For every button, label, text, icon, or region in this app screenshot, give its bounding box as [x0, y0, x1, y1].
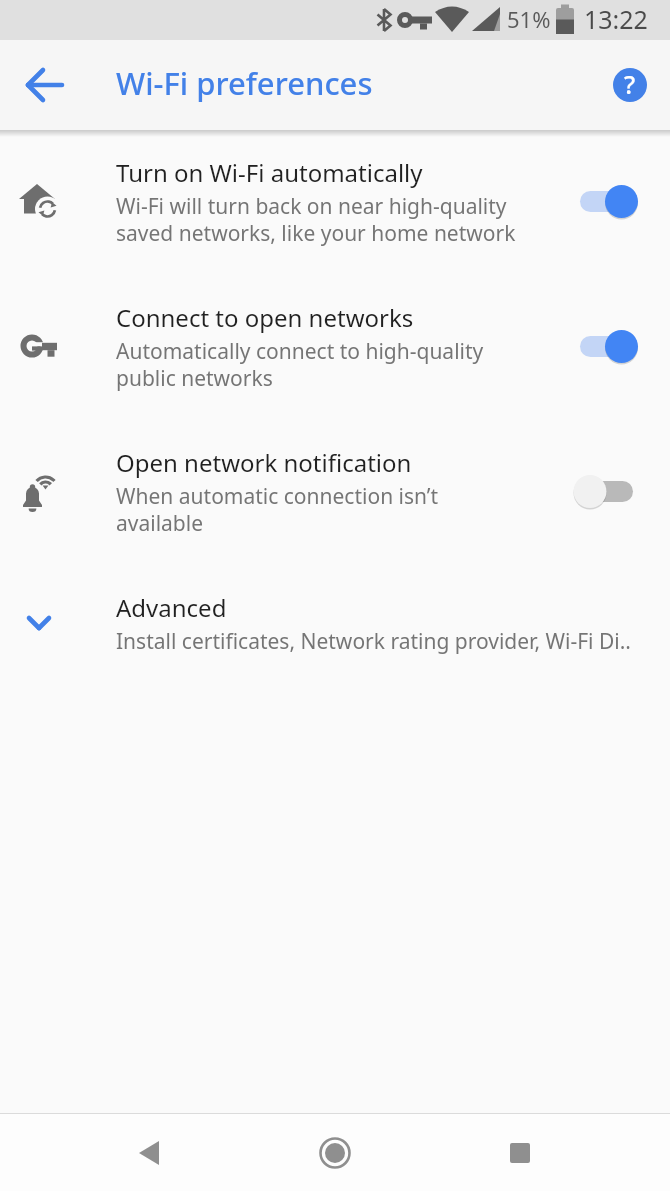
- staticText: Wi-Fi will turn back on near high-qualit…: [116, 192, 516, 247]
- button[interactable]: [572, 184, 640, 220]
- button[interactable]: ?: [613, 68, 647, 102]
- button[interactable]: Turn on Wi-Fi automatically: [0, 135, 670, 280]
- button[interactable]: [498, 1131, 542, 1175]
- staticText: ?: [624, 68, 636, 101]
- button[interactable]: [572, 474, 640, 510]
- button[interactable]: [313, 1131, 357, 1175]
- staticText: Install certificates, Network rating pro…: [116, 627, 632, 656]
- staticText: 13:22: [584, 2, 648, 36]
- staticText: Turn on Wi-Fi automatically: [116, 156, 423, 189]
- staticText: Open network notification: [116, 446, 412, 479]
- staticText: Connect to open networks: [116, 301, 414, 334]
- button[interactable]: Connect to open networks: [0, 280, 670, 425]
- staticText: Advanced: [116, 591, 227, 624]
- button[interactable]: [128, 1131, 172, 1175]
- button[interactable]: Advanced: [0, 570, 670, 715]
- staticText: Wi-Fi preferences: [116, 62, 373, 104]
- button[interactable]: Open network notification: [0, 425, 670, 570]
- button[interactable]: [17, 57, 73, 113]
- staticText: When automatic connection isn’t availabl…: [116, 482, 439, 537]
- button[interactable]: [572, 329, 640, 365]
- staticText: Automatically connect to high-quality pu…: [116, 337, 484, 392]
- staticText: 51%: [507, 4, 551, 34]
